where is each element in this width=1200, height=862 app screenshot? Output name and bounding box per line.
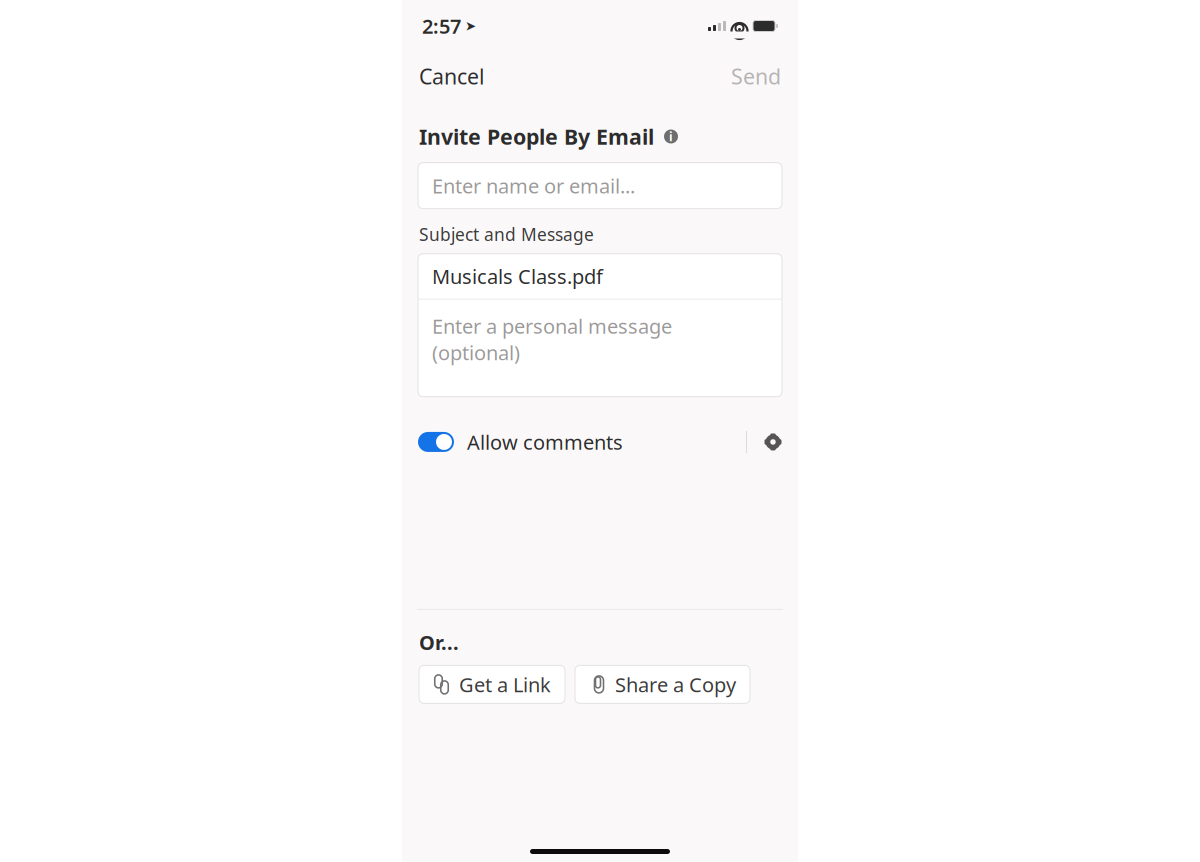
staticText: Invite People By Email [419, 122, 654, 151]
staticText: i [669, 128, 673, 144]
staticText: Send [731, 62, 781, 90]
button[interactable]: Share a Copy [575, 665, 750, 703]
staticText: 2:57 [422, 13, 461, 39]
staticText: Musicals Class.pdf [432, 263, 603, 289]
button[interactable]: More information [661, 126, 681, 146]
button[interactable]: Enter a personal message (optional) [418, 300, 782, 397]
staticText: Share a Copy [615, 671, 736, 698]
staticText: Or... [419, 629, 459, 655]
button[interactable]: Sharing settings [747, 427, 782, 457]
staticText: Enter name or email... [432, 172, 635, 199]
staticText: Subject and Message [419, 223, 594, 246]
staticText: Cancel [419, 62, 485, 90]
staticText: Get a Link [459, 671, 551, 698]
staticText: ➤ [465, 18, 476, 33]
button[interactable]: Cancel [419, 56, 495, 96]
button[interactable]: Musicals Class.pdf [418, 254, 782, 299]
staticText: Enter a personal message (optional) [432, 313, 672, 366]
button[interactable]: Get a Link [419, 665, 565, 703]
button[interactable]: Enter name or email... [418, 163, 782, 209]
button[interactable]: Allow comments [418, 421, 623, 463]
button[interactable]: Send [721, 56, 781, 96]
staticText: Allow comments [467, 429, 623, 455]
